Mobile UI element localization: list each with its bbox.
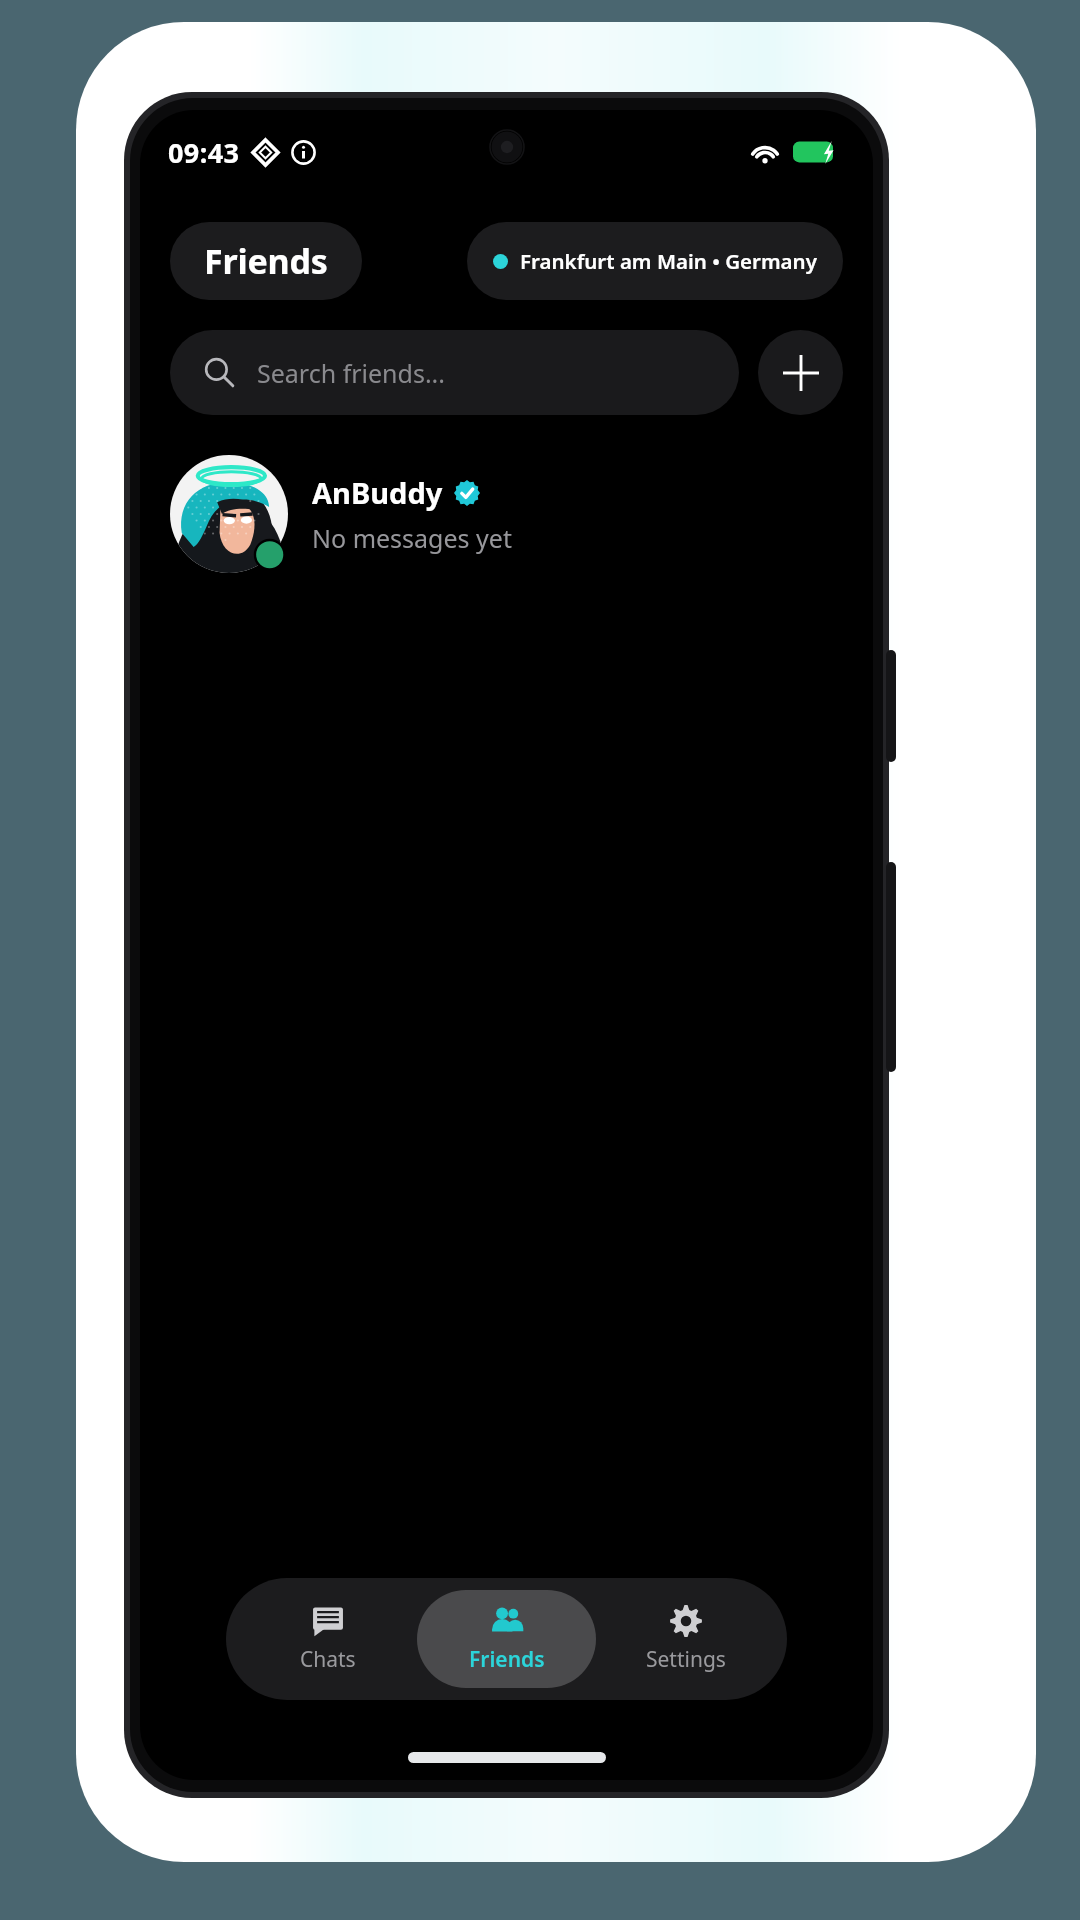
staticText: Frankfurt am Main • Germany [520, 247, 817, 275]
button[interactable]: Friends [170, 222, 362, 300]
staticText: Friends [204, 238, 328, 284]
staticText: Chats [300, 1645, 356, 1674]
button[interactable]: Chats [238, 1590, 417, 1688]
button[interactable]: Friends [417, 1590, 596, 1688]
staticText: 09:43 [168, 134, 240, 171]
button[interactable]: AnBuddy [140, 445, 873, 583]
staticText: Search friends... [257, 356, 446, 390]
staticText: Friends [469, 1645, 545, 1674]
button[interactable]: Settings [596, 1590, 775, 1688]
button[interactable]: Frankfurt am Main • Germany [467, 222, 843, 300]
staticText: AnBuddy [312, 473, 443, 512]
staticText: Settings [646, 1645, 726, 1674]
button[interactable]: Search friends... [170, 330, 739, 415]
staticText: No messages yet [312, 521, 512, 555]
button[interactable]: Add friend [758, 330, 843, 415]
